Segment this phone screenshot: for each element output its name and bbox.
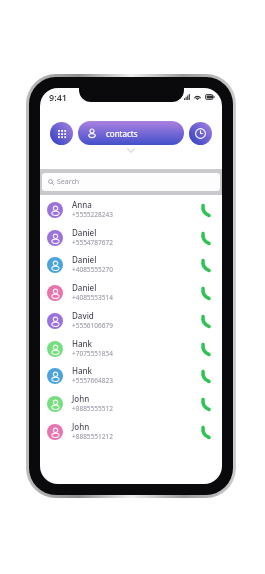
staticText: +4085555270: [72, 265, 113, 274]
button[interactable]: Call David: [195, 311, 215, 331]
button[interactable]: Hank: [40, 362, 222, 390]
staticText: +7075551854: [72, 349, 113, 358]
staticText: Anna: [72, 199, 92, 210]
staticText: +8885555512: [72, 404, 113, 413]
button[interactable]: Daniel: [40, 279, 222, 307]
button[interactable]: Apps: [50, 122, 73, 145]
staticText: Daniel: [72, 282, 97, 293]
staticText: Hank: [72, 365, 93, 376]
button[interactable]: Daniel: [40, 224, 222, 252]
staticText: +4085553514: [72, 293, 113, 302]
button[interactable]: John: [40, 390, 222, 418]
button[interactable]: David: [40, 307, 222, 335]
button[interactable]: Search: [42, 173, 220, 191]
button[interactable]: Call John: [195, 394, 215, 414]
button[interactable]: Call Daniel: [195, 283, 215, 303]
button[interactable]: Call Hank: [195, 339, 215, 359]
button[interactable]: Call John: [195, 422, 215, 442]
button[interactable]: John: [40, 418, 222, 446]
staticText: John: [72, 421, 90, 432]
button[interactable]: Call Daniel: [195, 255, 215, 275]
staticText: Search: [57, 177, 80, 187]
button[interactable]: Daniel: [40, 251, 222, 279]
staticText: +8885551212: [72, 432, 113, 441]
staticText: Daniel: [72, 227, 97, 238]
staticText: 9:41: [49, 91, 67, 103]
button[interactable]: Call Daniel: [195, 228, 215, 248]
button[interactable]: Call Anna: [195, 200, 215, 220]
button[interactable]: Call Hank: [195, 366, 215, 386]
staticText: David: [72, 310, 94, 321]
button[interactable]: Hank: [40, 335, 222, 363]
staticText: contacts: [106, 128, 138, 139]
staticText: +5556106679: [72, 321, 113, 330]
staticText: John: [72, 393, 90, 404]
button[interactable]: contacts: [78, 121, 184, 145]
button[interactable]: Recent: [189, 122, 212, 145]
staticText: +5557664823: [72, 376, 113, 385]
staticText: +5555228243: [72, 210, 113, 219]
staticText: +5554787672: [72, 238, 113, 247]
staticText: Hank: [72, 338, 93, 349]
button[interactable]: Anna: [40, 196, 222, 224]
staticText: Daniel: [72, 254, 97, 265]
